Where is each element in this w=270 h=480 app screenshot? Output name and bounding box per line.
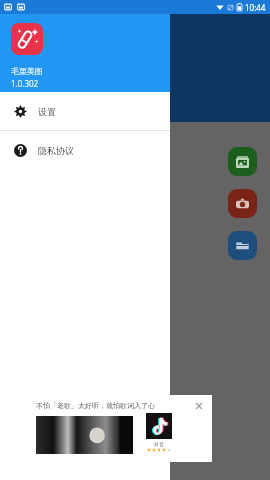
button[interactable]: Close ad — [192, 399, 206, 413]
button[interactable]: 隐私协议 — [0, 131, 170, 169]
button[interactable]: 不怕「老歌」太好听，就怕歌词入了心 — [28, 395, 212, 462]
staticText: 1.0.302 — [11, 78, 39, 89]
staticText: 10:44 — [245, 2, 266, 13]
staticText: 隐私协议 — [38, 145, 74, 156]
staticText: 设置 — [38, 106, 56, 117]
staticText: 不怕「老歌」太好听，就怕歌词入了心 — [36, 401, 155, 410]
button[interactable]: 设置 — [0, 92, 170, 130]
button[interactable]: Camera — [228, 189, 257, 218]
staticText: 抖音 — [154, 441, 164, 447]
button[interactable]: Gallery — [228, 147, 257, 176]
staticText: 毛栗美图 — [11, 66, 43, 76]
button[interactable]: Files — [228, 231, 257, 260]
